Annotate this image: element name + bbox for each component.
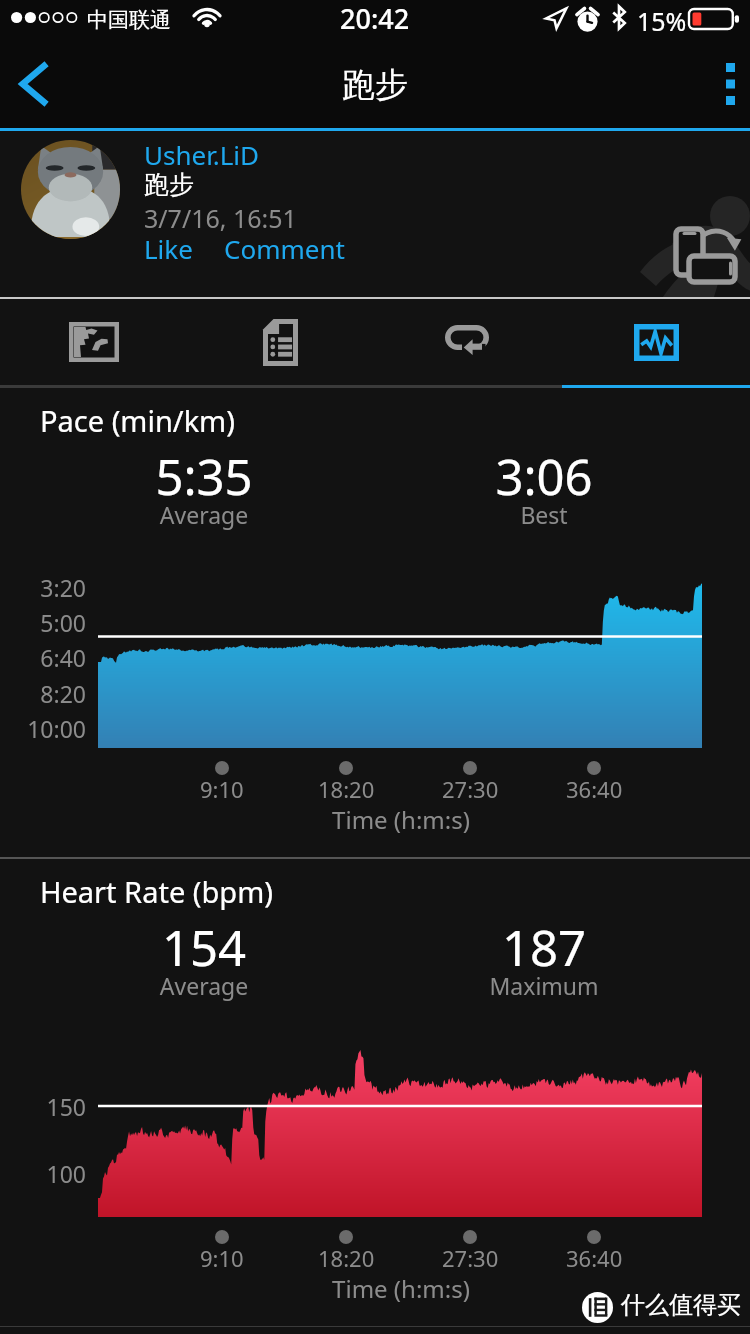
staticText: Time (h:m:s): [26, 803, 750, 836]
button[interactable]: Comment: [224, 231, 345, 266]
button[interactable]: Rotate screen: [668, 221, 750, 283]
staticText: 27:30: [442, 1243, 499, 1273]
button[interactable]: Map: [0, 299, 187, 385]
staticText: 9:10: [200, 1243, 244, 1273]
button[interactable]: Details: [187, 299, 374, 385]
staticText: 什么值得买: [621, 1290, 741, 1320]
button[interactable]: Charts: [562, 299, 750, 385]
staticText: 跑步: [342, 64, 408, 106]
staticText: 154: [54, 914, 354, 981]
button[interactable]: Like: [144, 231, 193, 266]
staticText: 15%: [637, 4, 687, 38]
staticText: 8:20: [0, 678, 86, 709]
staticText: Time (h:m:s): [26, 1272, 750, 1305]
staticText: Heart Rate (bpm): [40, 872, 273, 911]
staticText: 18:20: [318, 774, 375, 804]
staticText: 18:20: [318, 1243, 375, 1273]
staticText: 3:20: [0, 572, 86, 603]
staticText: 6:40: [0, 642, 86, 673]
button[interactable]: Back: [0, 40, 72, 128]
staticText: 5:35: [54, 443, 354, 510]
staticText: 3/7/16, 16:51: [144, 201, 297, 235]
staticText: 100: [0, 1158, 86, 1189]
staticText: 跑步: [144, 169, 194, 200]
staticText: 36:40: [566, 774, 623, 804]
staticText: 9:10: [200, 774, 244, 804]
staticText: Best: [394, 499, 694, 530]
staticText: 187: [394, 914, 694, 981]
staticText: 150: [0, 1091, 86, 1122]
staticText: Comment: [224, 231, 345, 266]
staticText: 中国联通: [87, 7, 171, 33]
staticText: 20:42: [340, 0, 410, 37]
staticText: 27:30: [442, 774, 499, 804]
staticText: Maximum: [394, 970, 694, 1001]
staticText: Usher.LiD: [144, 137, 260, 172]
staticText: 36:40: [566, 1243, 623, 1273]
button[interactable]: More options: [678, 40, 750, 128]
staticText: Pace (min/km): [40, 401, 235, 440]
button[interactable]: Laps: [374, 299, 562, 385]
staticText: 5:00: [0, 607, 86, 638]
staticText: 10:00: [0, 713, 86, 744]
staticText: Average: [54, 970, 354, 1001]
staticText: 3:06: [394, 443, 694, 510]
staticText: Like: [144, 231, 193, 266]
staticText: Average: [54, 499, 354, 530]
button[interactable]: Usher.LiD: [0, 131, 750, 297]
